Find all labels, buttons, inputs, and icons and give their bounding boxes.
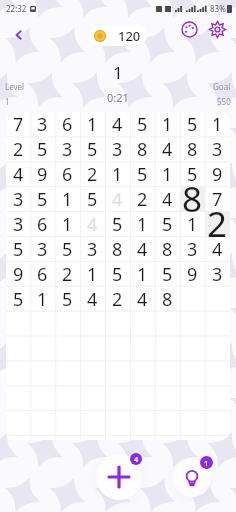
button[interactable]: 6 (55, 162, 80, 187)
button[interactable]: 5 (155, 212, 180, 237)
button[interactable]: 3 (80, 237, 105, 262)
button[interactable]: 2 (6, 137, 30, 162)
button[interactable]: 6 (30, 212, 55, 237)
button[interactable]: 7 (205, 187, 230, 212)
button[interactable]: 4 (155, 187, 180, 212)
button[interactable]: 120 (89, 25, 147, 46)
button[interactable]: 4 (130, 237, 155, 262)
staticText: 1 (87, 262, 98, 287)
button[interactable]: 3 (6, 212, 30, 237)
button[interactable]: 8 (155, 287, 180, 312)
button[interactable]: 8 (180, 137, 205, 162)
staticText: 1 (5, 96, 10, 107)
button[interactable] (130, 312, 155, 337)
button[interactable]: 8 (130, 137, 155, 162)
button[interactable]: 1 (155, 112, 180, 137)
button[interactable]: 9 (30, 162, 55, 187)
button[interactable]: 7 (6, 112, 30, 137)
button[interactable]: 4 (80, 287, 105, 312)
button[interactable]: 9 (180, 262, 205, 287)
staticText: 83% (210, 3, 226, 14)
staticText: 6 (37, 212, 48, 237)
button[interactable]: 4 (105, 112, 130, 137)
button[interactable] (205, 212, 230, 237)
button[interactable]: 3 (105, 137, 130, 162)
button[interactable]: Settings (204, 16, 230, 42)
button[interactable]: Add number (96, 454, 142, 500)
button[interactable] (180, 287, 205, 312)
button[interactable]: 4 (80, 212, 105, 237)
button[interactable]: 5 (155, 262, 180, 287)
button[interactable]: 5 (30, 137, 55, 162)
button[interactable]: 3 (30, 237, 55, 262)
button[interactable]: 3 (180, 237, 205, 262)
button[interactable]: 5 (130, 112, 155, 137)
button[interactable]: 1 (55, 212, 80, 237)
button[interactable]: 5 (105, 262, 130, 287)
button[interactable]: 1 (155, 162, 180, 187)
button[interactable]: Themes (176, 16, 202, 42)
button[interactable]: 4 (6, 162, 30, 187)
button[interactable]: 1 (30, 287, 55, 312)
button[interactable]: 5 (80, 187, 105, 212)
button[interactable]: 1 (130, 212, 155, 237)
button[interactable]: 5 (6, 287, 30, 312)
button[interactable]: Back (6, 22, 32, 48)
button[interactable]: 5 (6, 237, 30, 262)
staticText: 3 (187, 237, 198, 262)
button[interactable]: 5 (80, 137, 105, 162)
button[interactable] (180, 312, 205, 337)
button[interactable]: 8 (105, 237, 130, 262)
button[interactable]: 1 (130, 262, 155, 287)
button[interactable]: 1 (80, 262, 105, 287)
button[interactable]: 4 (105, 187, 130, 212)
button[interactable]: 1 (105, 162, 130, 187)
staticText: 7 (212, 187, 223, 212)
staticText: 4 (13, 162, 24, 187)
button[interactable]: 4 (205, 237, 230, 262)
button[interactable]: 5 (130, 162, 155, 187)
staticText: 4 (137, 287, 148, 312)
button[interactable]: 3 (30, 112, 55, 137)
button[interactable]: 5 (30, 187, 55, 212)
button[interactable]: 5 (55, 287, 80, 312)
button[interactable]: 5 (180, 112, 205, 137)
button[interactable]: 5 (55, 237, 80, 262)
staticText: 4 (162, 187, 173, 212)
button[interactable]: 9 (6, 262, 30, 287)
button[interactable]: 4 (130, 287, 155, 312)
staticText: 22:32 (6, 3, 27, 14)
button[interactable] (105, 312, 130, 337)
button[interactable]: 1 (55, 187, 80, 212)
button[interactable]: 1 (205, 112, 230, 137)
button[interactable]: Hint (173, 459, 211, 497)
button[interactable]: 3 (205, 137, 230, 162)
button[interactable]: 3 (55, 137, 80, 162)
button[interactable]: 2 (55, 262, 80, 287)
button[interactable]: 3 (6, 187, 30, 212)
button[interactable]: 1 (180, 212, 205, 237)
staticText: 5 (112, 262, 123, 287)
button[interactable]: 9 (205, 162, 230, 187)
button[interactable]: 4 (155, 137, 180, 162)
button[interactable]: 6 (55, 112, 80, 137)
button[interactable]: 5 (180, 162, 205, 187)
button[interactable]: 8 (155, 237, 180, 262)
button[interactable] (180, 187, 205, 212)
button[interactable]: 2 (130, 187, 155, 212)
button[interactable]: 5 (105, 212, 130, 237)
button[interactable]: 3 (205, 262, 230, 287)
button[interactable]: 1 (80, 112, 105, 137)
staticText: 1 (113, 61, 123, 84)
button[interactable] (155, 312, 180, 337)
button[interactable]: 2 (80, 162, 105, 187)
button[interactable]: 2 (105, 287, 130, 312)
button[interactable]: 6 (30, 262, 55, 287)
button[interactable] (80, 312, 105, 337)
staticText: 9 (13, 262, 24, 287)
